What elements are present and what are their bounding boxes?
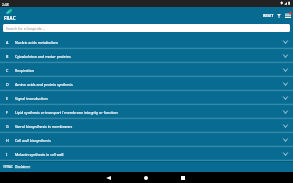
staticText: I — [6, 152, 8, 157]
button[interactable]: A — [0, 35, 293, 49]
staticText: Nucleic acids metabolism — [15, 40, 279, 45]
staticText: Signal transduction — [15, 96, 279, 101]
button[interactable]: F — [0, 105, 293, 119]
staticText: Amino acids and protein synthesis — [15, 82, 279, 87]
button[interactable]: B — [0, 49, 293, 63]
button[interactable]: C — [0, 63, 293, 77]
staticText: Sterol biosynthesis in membranes — [15, 124, 279, 129]
staticText: B — [6, 54, 9, 59]
staticText: G — [6, 124, 9, 129]
button[interactable]: Back — [90, 172, 127, 183]
button[interactable]: Disclaimer — [15, 165, 31, 169]
staticText: ©FRAC — [3, 165, 13, 169]
staticText: Disclaimer — [15, 165, 31, 169]
staticText: C — [6, 68, 9, 73]
staticText: F — [6, 110, 8, 115]
staticText: 2:48 — [2, 2, 9, 6]
staticText: A — [6, 40, 9, 45]
staticText: Cytoskeleton and motor proteins — [15, 54, 279, 59]
staticText: Search for a fungicide... — [6, 26, 45, 31]
button[interactable]: G — [0, 119, 293, 133]
staticText: D — [6, 82, 9, 87]
button[interactable]: I — [0, 147, 293, 161]
button[interactable]: RESET — [261, 7, 275, 24]
button[interactable]: E — [0, 91, 293, 105]
button[interactable]: Filter — [275, 7, 283, 24]
staticText: H — [6, 138, 9, 143]
button[interactable]: H — [0, 133, 293, 147]
staticText: Respiration — [15, 68, 279, 73]
staticText: FRAC — [4, 15, 16, 21]
staticText: Cell wall biosynthesis — [15, 138, 279, 143]
staticText: E — [6, 96, 8, 101]
button[interactable]: Search for a fungicide... — [3, 24, 290, 32]
staticText: Melanin synthesis in cell wall — [15, 152, 279, 157]
button[interactable]: D — [0, 77, 293, 91]
staticText: Lipid synthesis or transport / membrane … — [15, 110, 279, 115]
staticText: RESET — [263, 13, 274, 18]
button[interactable]: Sort and filter options — [283, 7, 292, 24]
button[interactable]: Recent apps — [164, 172, 201, 183]
button[interactable]: Home — [127, 172, 164, 183]
